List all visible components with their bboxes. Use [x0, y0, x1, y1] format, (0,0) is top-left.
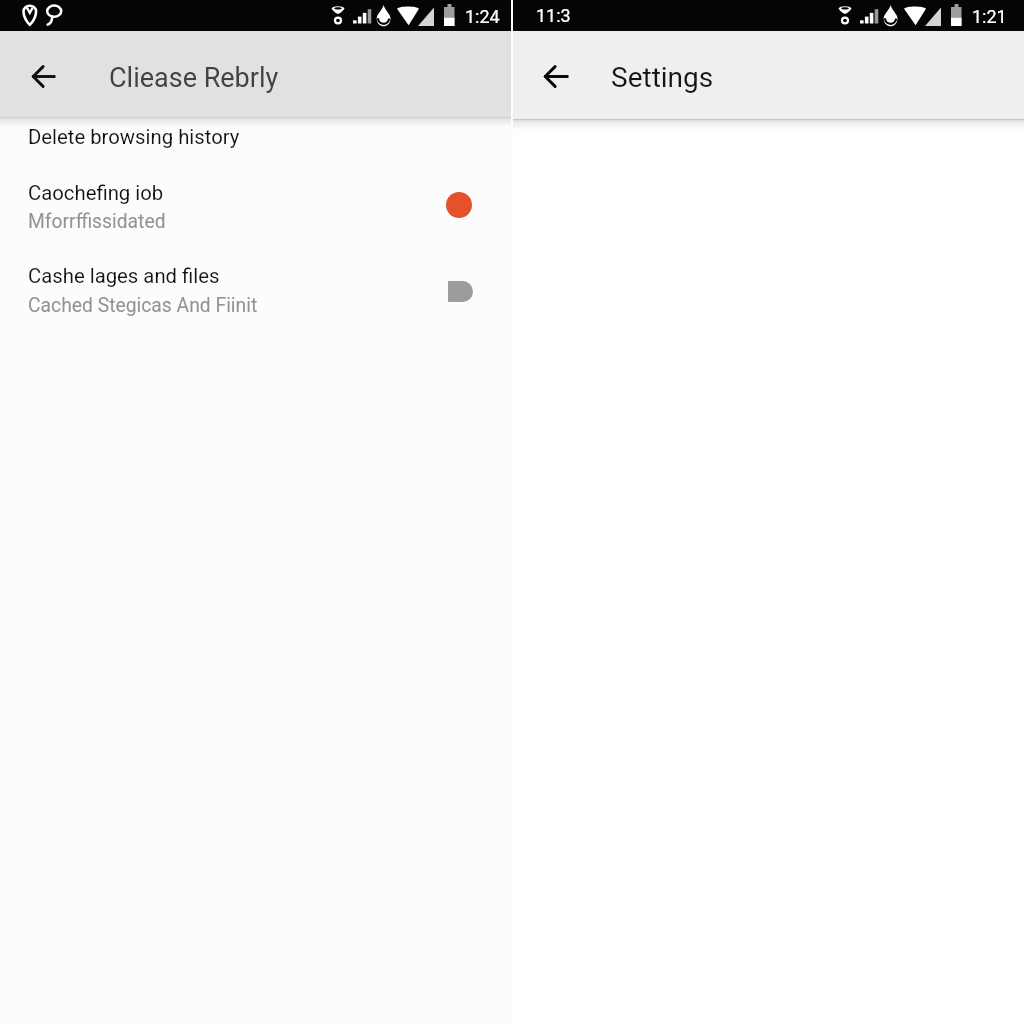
staticText: 1:21 — [972, 6, 1007, 27]
staticText: Mforrffissidated — [28, 210, 166, 233]
staticText: Caochefing iob — [28, 181, 164, 205]
staticText: Settings — [611, 61, 714, 94]
button[interactable]: Cashe lages and files — [0, 251, 511, 321]
staticText: 11:3 — [536, 5, 571, 26]
staticText: 1:24 — [465, 6, 500, 27]
staticText: Cliease Rebrly — [109, 62, 279, 94]
button[interactable]: Caochefing iob — [0, 168, 511, 238]
button[interactable]: Back — [533, 53, 580, 100]
staticText: Cached Stegicas And Fiinit — [28, 294, 258, 317]
button[interactable]: Toggle caching — [428, 174, 490, 236]
staticText: Delete browsing history — [28, 125, 240, 149]
staticText: Cashe lages and files — [28, 264, 220, 288]
button[interactable]: Toggle cached images and files — [429, 260, 491, 322]
button[interactable]: Back — [20, 53, 67, 100]
button[interactable]: Delete browsing history — [0, 121, 511, 153]
